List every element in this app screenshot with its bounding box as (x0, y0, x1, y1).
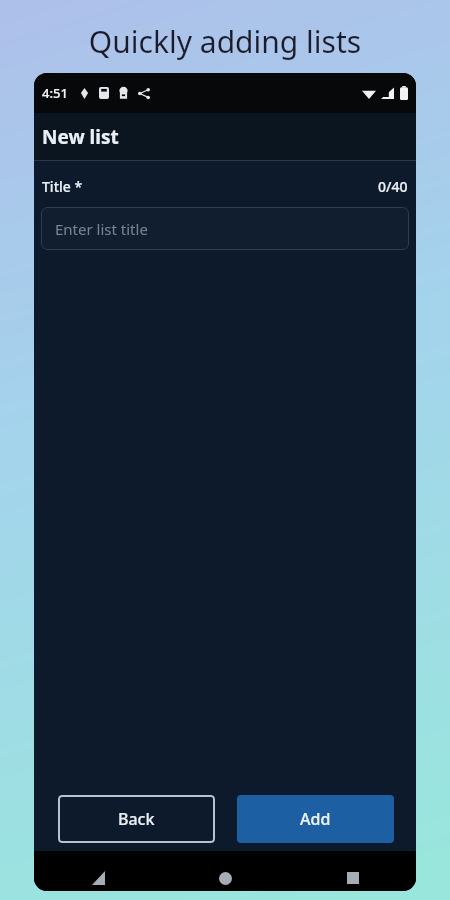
staticText: Title * (42, 177, 83, 196)
staticText: New list (42, 124, 119, 150)
button[interactable]: Back (58, 795, 215, 843)
staticText: Quickly adding lists (0, 21, 450, 62)
staticText: Back (118, 808, 155, 830)
button[interactable]: Enter list title (41, 207, 409, 250)
button[interactable]: Add (237, 795, 394, 843)
staticText: Add (300, 808, 331, 830)
staticText: 0/40 (378, 177, 408, 196)
button[interactable]: Recent apps (289, 865, 416, 891)
button[interactable]: Home (162, 865, 289, 891)
staticText: Enter list title (55, 219, 148, 239)
staticText: 4:51 (42, 84, 68, 102)
button[interactable]: Back (34, 865, 162, 891)
